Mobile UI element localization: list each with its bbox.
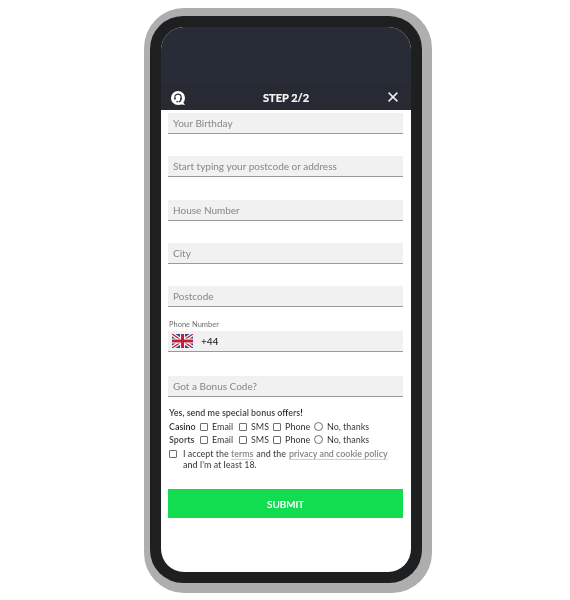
staticText: No, thanks [327, 421, 370, 432]
button[interactable]: SMS [239, 434, 273, 445]
staticText: Email [212, 421, 234, 432]
staticText: Yes, send me special bonus offers! [169, 407, 303, 418]
staticText: STEP 2/2 [263, 91, 310, 104]
staticText: SMS [251, 434, 270, 445]
button[interactable] [169, 450, 177, 458]
button[interactable]: Phone [273, 434, 314, 445]
staticText: +44 [201, 335, 219, 347]
button[interactable]: SUBMIT [168, 489, 403, 518]
button[interactable]: Support [171, 91, 185, 105]
button[interactable]: Email [200, 434, 239, 445]
button[interactable]: Your Birthday [168, 113, 403, 133]
button[interactable]: Got a Bonus Code? [168, 376, 403, 396]
staticText: and the [254, 448, 289, 459]
staticText: Phone [285, 421, 311, 432]
button[interactable]: terms [231, 448, 254, 459]
staticText: Phone Number [169, 320, 219, 329]
button[interactable]: SMS [239, 421, 273, 432]
staticText: City [173, 247, 191, 259]
staticText: No, thanks [327, 434, 370, 445]
staticText: Got a Bonus Code? [173, 380, 257, 392]
staticText: SUBMIT [267, 498, 305, 510]
staticText: Phone [285, 434, 311, 445]
button[interactable]: City [168, 243, 403, 263]
staticText: House Number [173, 204, 240, 216]
button[interactable]: Email [200, 421, 239, 432]
button[interactable]: +44 [168, 331, 403, 351]
staticText: and I'm at least 18. [183, 459, 257, 470]
button[interactable]: privacy and cookie policy [289, 448, 388, 459]
staticText: Your Birthday [173, 117, 233, 129]
staticText: SMS [251, 421, 270, 432]
button[interactable]: No, thanks [314, 421, 370, 432]
button[interactable]: Start typing your postcode or address [168, 156, 403, 176]
button[interactable]: No, thanks [314, 434, 370, 445]
staticText: Email [212, 434, 234, 445]
staticText: I accept the [183, 448, 231, 459]
staticText: Start typing your postcode or address [173, 160, 337, 172]
staticText: Sports [169, 434, 200, 445]
button[interactable]: Close [383, 87, 403, 107]
button[interactable]: Postcode [168, 286, 403, 306]
staticText: Casino [169, 421, 200, 432]
button[interactable]: House Number [168, 200, 403, 220]
staticText: Postcode [173, 290, 214, 302]
button[interactable]: Phone [273, 421, 314, 432]
